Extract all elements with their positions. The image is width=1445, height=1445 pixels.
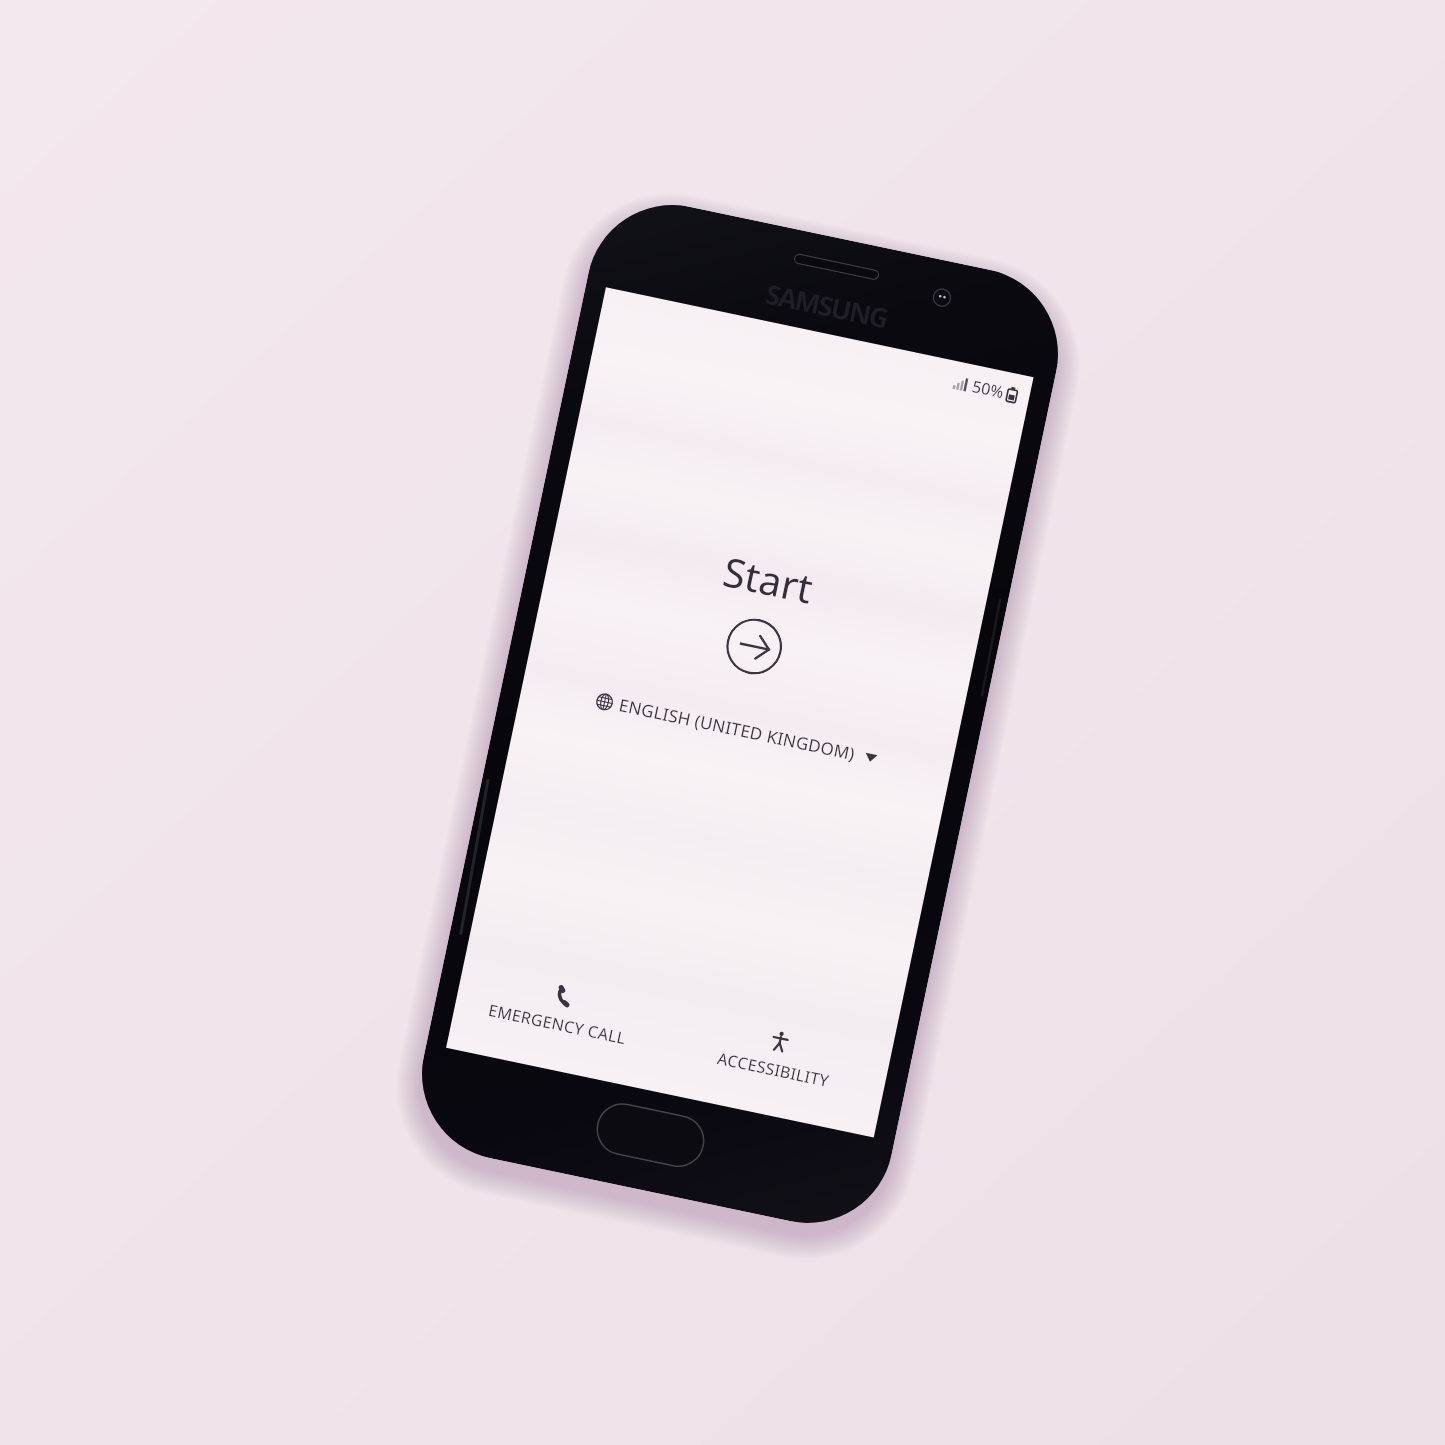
button[interactable]: Home	[591, 1098, 710, 1172]
staticText: ACCESSIBILITY	[715, 1047, 832, 1092]
button[interactable]: ENGLISH (UNITED KINGDOM)	[593, 688, 879, 770]
staticText: 50%	[970, 375, 1006, 403]
staticText: Start	[719, 543, 818, 615]
staticText: EMERGENCY CALL	[487, 999, 628, 1049]
button[interactable]: Start setup	[721, 613, 787, 680]
button[interactable]: EMERGENCY CALL	[480, 970, 639, 1056]
button[interactable]: ACCESSIBILITY	[697, 1016, 855, 1102]
staticText: ENGLISH (UNITED KINGDOM)	[617, 693, 858, 765]
staticText: SAMSUNG	[762, 275, 891, 336]
